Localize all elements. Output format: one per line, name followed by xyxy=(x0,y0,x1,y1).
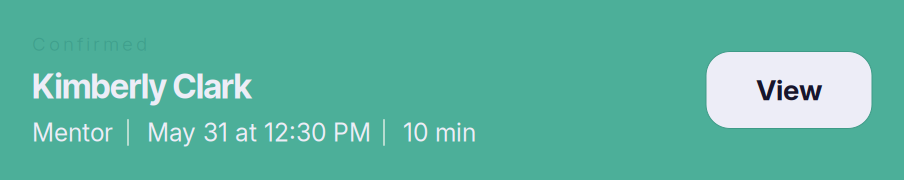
staticText: Kimberly Clark xyxy=(32,66,251,106)
staticText: Confirmed xyxy=(32,33,147,55)
staticText: Mentor xyxy=(32,117,113,147)
staticText: View xyxy=(756,73,822,107)
staticText: 10 min xyxy=(403,117,476,147)
staticText: May 31 at 12:30 PM xyxy=(147,117,371,147)
button[interactable]: View xyxy=(706,51,872,128)
